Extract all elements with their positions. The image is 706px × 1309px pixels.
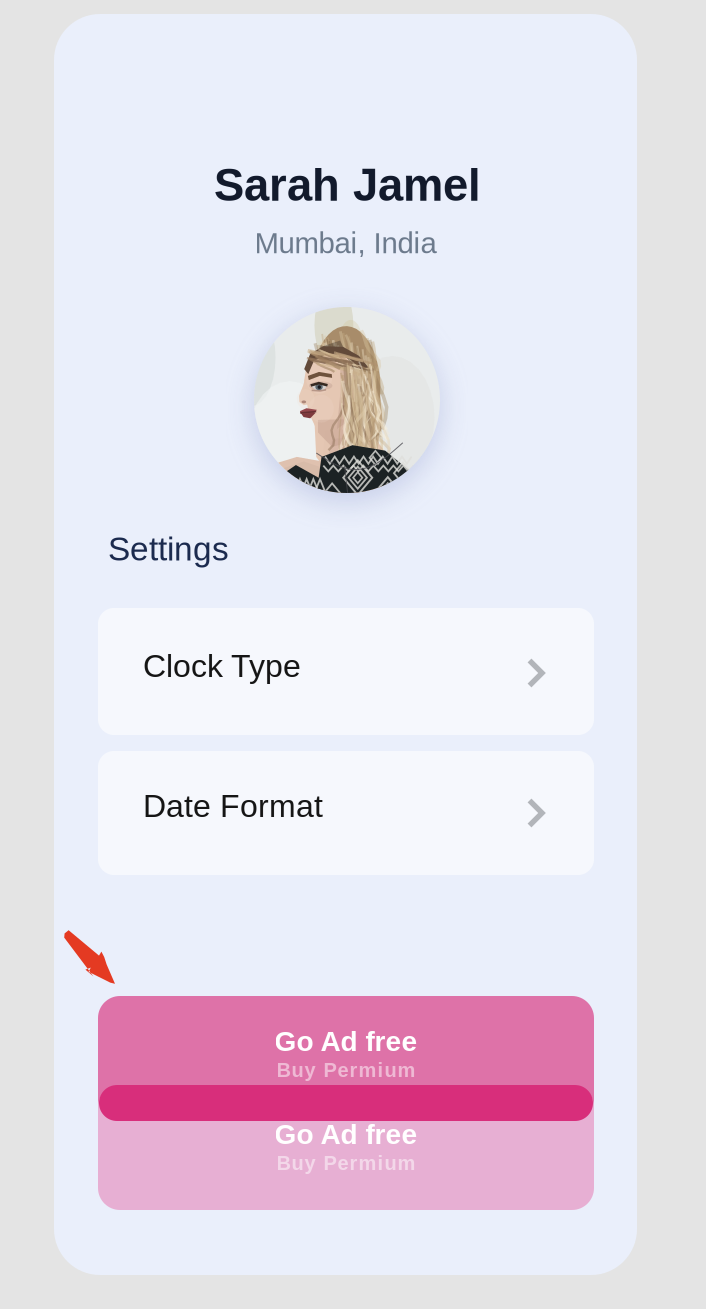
staticText: Mumbai, India (254, 227, 436, 259)
staticText: Go Ad free (274, 1119, 417, 1150)
staticText: Sarah Jamel (214, 160, 481, 210)
button[interactable]: Clock Type (98, 608, 594, 735)
button[interactable]: Date Format (98, 751, 594, 875)
button[interactable]: Go Ad free (98, 1085, 594, 1210)
staticText: Buy Permium (276, 1059, 415, 1081)
staticText: Clock Type (143, 648, 301, 684)
button[interactable]: Go Ad free (98, 996, 594, 1125)
staticText: Date Format (143, 788, 323, 824)
staticText: Settings (108, 530, 229, 568)
staticText: Buy Permium (276, 1152, 415, 1174)
staticText: Go Ad free (274, 1026, 417, 1057)
